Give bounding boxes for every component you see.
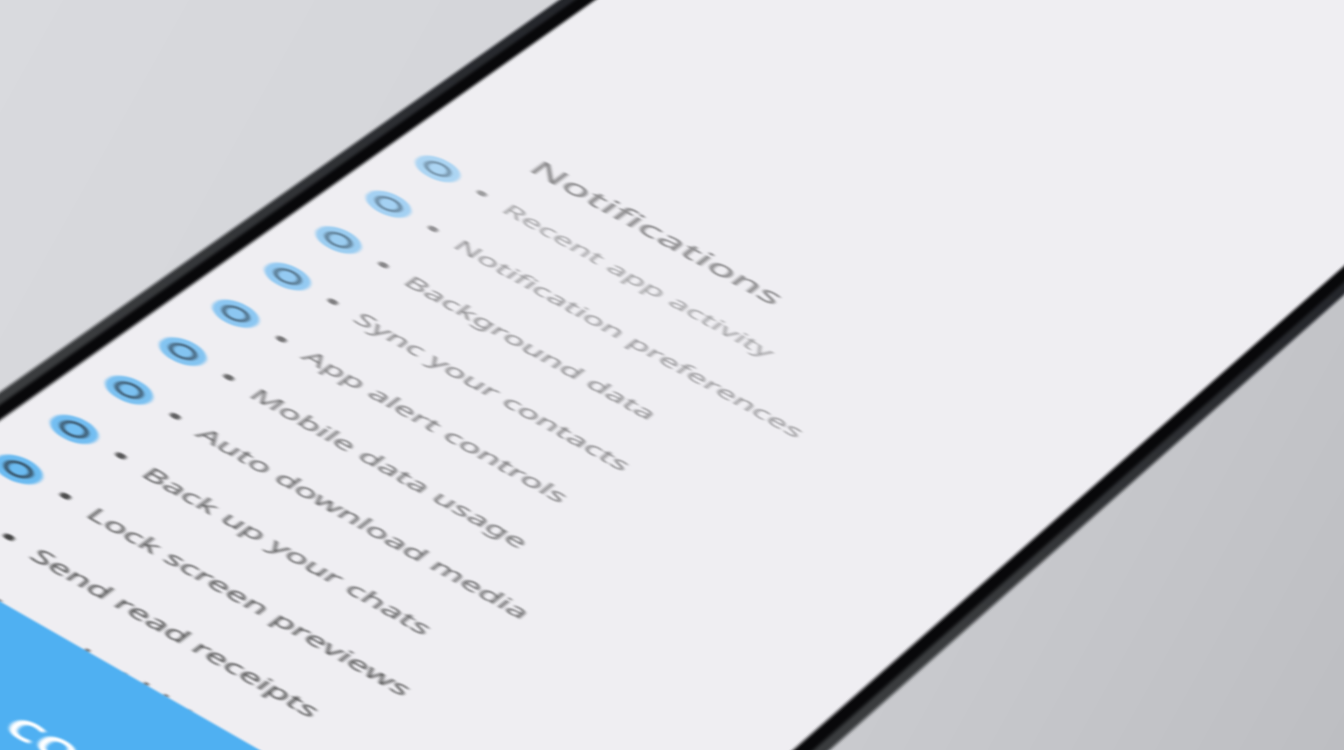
- staticText: Auto download media: [189, 422, 765, 750]
- button[interactable]: Keep chat history: [0, 503, 605, 750]
- staticText: Mobile data usage: [242, 383, 814, 710]
- staticText: Join the beta program: [0, 671, 453, 750]
- button[interactable]: High quality uploads: [0, 544, 552, 750]
- staticText: App alert controls: [295, 345, 861, 668]
- button[interactable]: CONTINUE: [0, 520, 583, 750]
- staticText: Back up your chats: [134, 462, 715, 750]
- button[interactable]: Back up your chats: [0, 382, 758, 750]
- button[interactable]: Notification preferences: [317, 161, 1039, 573]
- button[interactable]: Vibrate for priority: [0, 719, 329, 750]
- staticText: Keep chat history: [0, 585, 561, 750]
- staticText: Clear cached media: [0, 716, 397, 750]
- button[interactable]: Send read receipts: [0, 462, 657, 750]
- button[interactable]: Background data: [266, 196, 994, 613]
- staticText: CONTINUE: [0, 708, 274, 750]
- button[interactable]: Recent app activity: [367, 126, 1083, 534]
- staticText: Notifications: [521, 154, 794, 311]
- button[interactable]: Auto download media: [53, 344, 807, 750]
- button[interactable]: Lock screen previews: [0, 422, 708, 750]
- staticText: Recent app activity: [495, 199, 1044, 508]
- staticText: Send read receipts: [22, 543, 613, 750]
- button[interactable]: Sync your contacts: [214, 232, 949, 654]
- button[interactable]: Clear cached media: [0, 630, 443, 750]
- button[interactable]: Mobile data usage: [108, 306, 855, 738]
- staticText: Notification preferences: [447, 235, 999, 547]
- button[interactable]: Join the beta program: [0, 587, 498, 750]
- staticText: Lock screen previews: [79, 502, 665, 750]
- button[interactable]: App alert controls: [162, 268, 902, 696]
- staticText: Sync your contacts: [346, 308, 908, 627]
- staticText: Background data: [397, 271, 954, 587]
- staticText: High quality uploads: [0, 628, 507, 750]
- button[interactable]: Show sender names: [0, 674, 387, 750]
